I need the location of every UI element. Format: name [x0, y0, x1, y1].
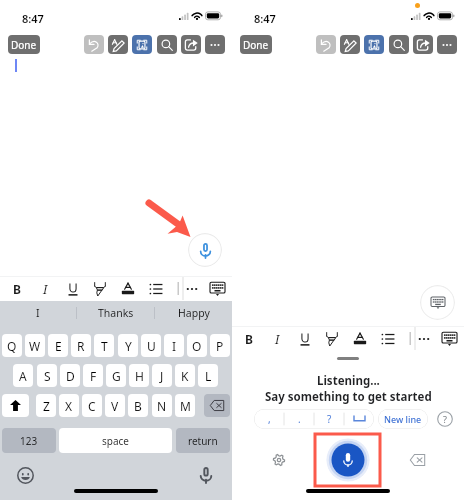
button[interactable]: H: [129, 364, 149, 387]
staticText: E: [55, 338, 62, 354]
button[interactable]: Undo: [84, 35, 104, 54]
button[interactable]: Shift: [2, 394, 29, 417]
staticText: F: [90, 368, 97, 384]
button[interactable]: Show keyboard: [420, 285, 455, 320]
button[interactable]: Bold: [6, 277, 28, 300]
button[interactable]: Stop dictation: [326, 438, 370, 482]
button[interactable]: Italic: [266, 327, 288, 350]
button[interactable]: More formatting: [413, 327, 435, 350]
button[interactable]: M: [175, 394, 195, 417]
button[interactable]: Share: [413, 35, 433, 54]
staticText: Happy: [178, 306, 210, 320]
button[interactable]: S: [37, 364, 57, 387]
button[interactable]: ?: [314, 409, 344, 429]
button[interactable]: Done: [240, 35, 272, 54]
button[interactable]: J: [152, 364, 172, 387]
button[interactable]: N: [152, 394, 172, 417]
button[interactable]: Emoji: [14, 464, 36, 486]
button[interactable]: More: [437, 35, 457, 54]
button[interactable]: Highlight: [89, 277, 111, 300]
button[interactable]: Done: [8, 35, 40, 54]
button[interactable]: B: [128, 394, 148, 417]
staticText: space: [102, 434, 129, 448]
button[interactable]: Hide keyboard: [206, 277, 228, 300]
button[interactable]: ,: [254, 409, 284, 429]
staticText: M: [180, 398, 191, 414]
button[interactable]: Dictate: [188, 233, 222, 267]
staticText: L: [205, 368, 212, 384]
button[interactable]: I: [164, 334, 184, 357]
button[interactable]: return: [176, 428, 230, 453]
staticText: Listening...: [317, 373, 380, 389]
button[interactable]: Backspace: [406, 449, 428, 471]
button[interactable]: Highlight: [321, 327, 343, 350]
button[interactable]: Scan document: [132, 35, 152, 54]
staticText: T: [101, 338, 108, 354]
button[interactable]: 123: [2, 428, 56, 453]
staticText: J: [160, 368, 164, 384]
button[interactable]: R: [71, 334, 91, 357]
button[interactable]: Markup: [108, 35, 128, 54]
button[interactable]: Undo: [316, 35, 336, 54]
button[interactable]: space: [59, 428, 172, 453]
button[interactable]: U: [141, 334, 161, 357]
button[interactable]: Italic: [34, 277, 56, 300]
staticText: ,: [268, 412, 271, 426]
staticText: 8:47: [254, 11, 276, 26]
button[interactable]: Settings: [268, 449, 290, 471]
staticText: I: [43, 281, 48, 297]
staticText: I: [275, 331, 280, 347]
button[interactable]: Underline: [294, 327, 316, 350]
button[interactable]: G: [106, 364, 126, 387]
button[interactable]: L: [198, 364, 218, 387]
button[interactable]: P: [210, 334, 230, 357]
button[interactable]: Y: [118, 334, 138, 357]
staticText: X: [65, 398, 73, 414]
button[interactable]: Q: [2, 334, 22, 357]
button[interactable]: A: [13, 364, 33, 387]
button[interactable]: Backspace: [204, 394, 230, 417]
staticText: G: [112, 368, 121, 384]
button[interactable]: T: [94, 334, 114, 357]
staticText: A: [19, 368, 27, 384]
button[interactable]: Markup: [340, 35, 360, 54]
button[interactable]: Bulleted list: [145, 277, 167, 300]
button[interactable]: Share: [181, 35, 201, 54]
staticText: Z: [43, 398, 50, 414]
button[interactable]: More: [205, 35, 225, 54]
staticText: O: [192, 338, 202, 354]
button[interactable]: X: [59, 394, 79, 417]
staticText: D: [66, 368, 75, 384]
button[interactable]: Hide keyboard: [438, 327, 460, 350]
button[interactable]: .: [284, 409, 314, 429]
staticText: B: [245, 331, 253, 347]
button[interactable]: Dictation: [195, 464, 217, 486]
button[interactable]: K: [175, 364, 195, 387]
button[interactable]: O: [187, 334, 207, 357]
staticText: K: [181, 368, 189, 384]
button[interactable]: More formatting: [181, 277, 203, 300]
button[interactable]: [344, 409, 374, 429]
button[interactable]: Text color: [349, 327, 371, 350]
button[interactable]: Text color: [117, 277, 139, 300]
button[interactable]: Help: [436, 410, 454, 428]
button[interactable]: D: [60, 364, 80, 387]
button[interactable]: Search: [157, 35, 177, 54]
button[interactable]: Search: [389, 35, 409, 54]
staticText: I: [172, 338, 177, 354]
button[interactable]: Happy: [155, 301, 232, 325]
button[interactable]: W: [25, 334, 45, 357]
button[interactable]: V: [105, 394, 125, 417]
button[interactable]: Thanks: [77, 301, 154, 325]
button[interactable]: Scan document: [364, 35, 384, 54]
staticText: ?: [327, 412, 332, 426]
button[interactable]: Bulleted list: [377, 327, 399, 350]
button[interactable]: Z: [36, 394, 56, 417]
button[interactable]: F: [83, 364, 103, 387]
button[interactable]: Bold: [238, 327, 260, 350]
button[interactable]: Underline: [62, 277, 84, 300]
button[interactable]: E: [48, 334, 68, 357]
button[interactable]: New line: [378, 409, 428, 429]
button[interactable]: I: [0, 301, 76, 325]
button[interactable]: C: [82, 394, 102, 417]
